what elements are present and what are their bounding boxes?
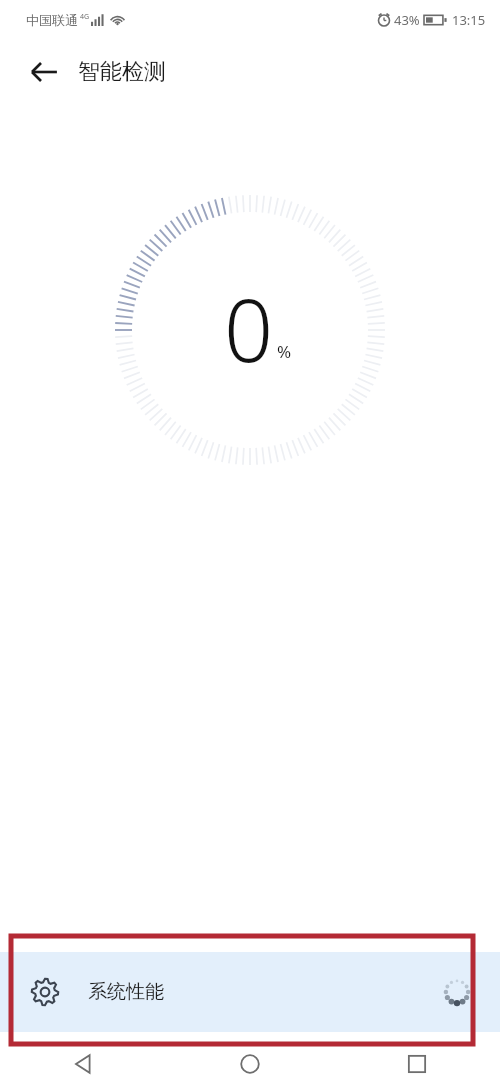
button[interactable]: Home <box>166 1045 333 1083</box>
staticText: 43% <box>394 11 420 29</box>
staticText: 13:15 <box>452 11 486 29</box>
staticText: 中国联通 <box>26 12 78 28</box>
staticText: 0 <box>224 270 274 387</box>
staticText: 4G <box>80 12 90 22</box>
button[interactable]: Back <box>0 1045 166 1083</box>
staticText: % <box>277 340 292 363</box>
button[interactable]: Back <box>20 48 68 96</box>
button[interactable]: Recents <box>333 1045 500 1083</box>
button[interactable]: 系统性能 <box>0 952 500 1032</box>
staticText: 系统性能 <box>88 980 164 1004</box>
staticText: 智能检测 <box>78 58 166 86</box>
